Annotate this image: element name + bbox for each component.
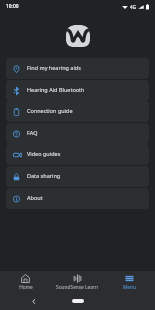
staticText: Home	[19, 284, 33, 291]
button[interactable]: Data sharing	[6, 166, 149, 187]
staticText: SoundSense Learn	[56, 284, 98, 291]
button[interactable]: SoundSense Learn	[51, 271, 103, 292]
button[interactable]: Hearing Aid Bluetooth	[6, 80, 149, 101]
staticText: Connection guide	[27, 107, 73, 114]
staticText: Video guides	[27, 150, 61, 157]
button[interactable]: Back	[31, 299, 36, 304]
staticText: Menu	[123, 284, 136, 291]
staticText: About	[27, 194, 43, 201]
button[interactable]: Home	[72, 299, 84, 303]
button[interactable]: Connection guide	[6, 101, 149, 122]
staticText: Find my hearing aids	[27, 64, 81, 71]
button[interactable]: Video guides	[6, 144, 149, 165]
button[interactable]: FAQ	[6, 123, 149, 144]
staticText: Data sharing	[27, 172, 61, 179]
staticText: 10:00	[6, 3, 19, 10]
button[interactable]: Find my hearing aids	[6, 58, 149, 79]
staticText: FAQ	[27, 129, 38, 136]
button[interactable]: Home	[0, 271, 51, 292]
staticText: Hearing Aid Bluetooth	[27, 86, 85, 93]
button[interactable]: Menu	[103, 271, 155, 292]
staticText: 4G	[130, 4, 136, 10]
button[interactable]: About	[6, 188, 149, 209]
